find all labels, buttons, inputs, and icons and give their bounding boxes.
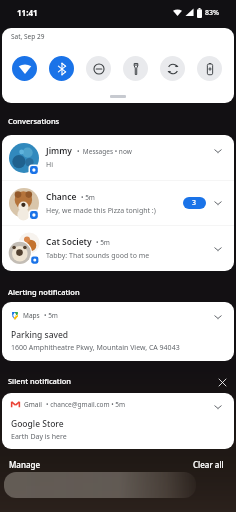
button[interactable] <box>160 56 185 81</box>
staticText: • Messages • now <box>77 147 132 156</box>
staticText: Cat Society <box>46 236 92 248</box>
staticText: Manage <box>9 459 41 470</box>
button[interactable]: Clear all <box>193 459 224 470</box>
button[interactable]: Maps <box>2 302 234 361</box>
button[interactable]: Chance <box>2 181 234 225</box>
staticText: Tabby: That sounds good to me <box>46 251 150 261</box>
staticText: Hi <box>46 160 53 170</box>
staticText: Alerting notification <box>8 287 80 297</box>
staticText: Earth Day is here <box>11 432 67 442</box>
staticText: Silent notification <box>8 376 72 386</box>
staticText: Clear all <box>193 459 224 470</box>
staticText: 1600 Amphitheatre Pkwy, Mountain View, C… <box>11 343 180 353</box>
staticText: Google Store <box>11 418 64 430</box>
button[interactable]: Manage <box>9 459 41 470</box>
staticText: • 5m <box>81 193 95 202</box>
button[interactable] <box>123 56 148 81</box>
button[interactable] <box>12 56 37 81</box>
button[interactable] <box>86 56 111 81</box>
button[interactable]: Jimmy <box>2 135 234 180</box>
button[interactable]: Cat Society <box>2 226 234 271</box>
staticText: Jimmy <box>46 145 73 157</box>
staticText: • 5m <box>96 238 110 247</box>
button[interactable] <box>218 378 227 387</box>
staticText: Hey, we made this Pizza tonight :) <box>46 206 156 216</box>
staticText: 11:41 <box>17 7 38 18</box>
staticText: Chance <box>46 191 77 203</box>
staticText: Conversations <box>8 116 60 126</box>
staticText: Maps <box>23 311 40 320</box>
staticText: • 5m <box>44 311 58 320</box>
button[interactable] <box>49 56 74 81</box>
button[interactable] <box>197 56 222 81</box>
button[interactable]: Gmail <box>2 393 234 449</box>
staticText: Gmail <box>24 400 42 409</box>
staticText: Sat, Sep 29 <box>11 32 45 41</box>
staticText: 3 <box>192 198 197 208</box>
staticText: Parking saved <box>11 329 69 341</box>
staticText: 83% <box>205 8 219 18</box>
staticText: • chance@gmail.com • 5m <box>46 400 126 409</box>
